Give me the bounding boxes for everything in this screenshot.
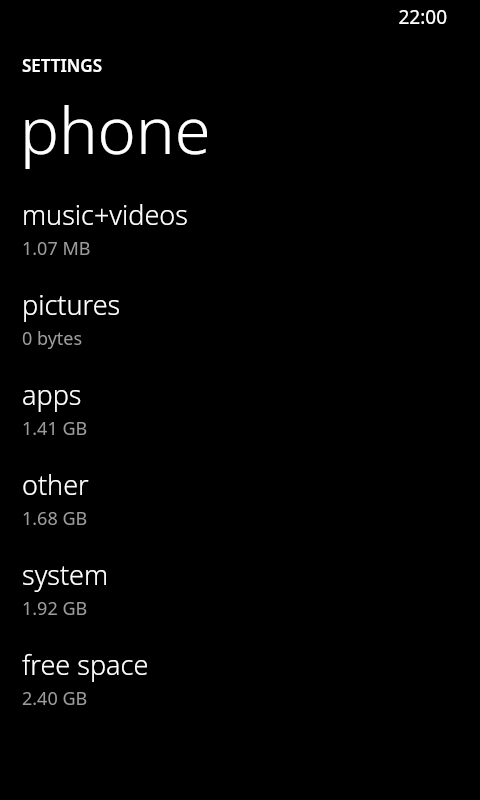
button[interactable]: apps — [0, 376, 480, 464]
staticText: other — [22, 466, 89, 503]
staticText: pictures — [22, 286, 121, 323]
button[interactable]: other — [0, 466, 480, 554]
staticText: 1.68 GB — [22, 506, 88, 531]
staticText: system — [22, 556, 109, 593]
button[interactable]: music+videos — [0, 196, 480, 284]
staticText: 22:00 — [398, 4, 447, 30]
button[interactable]: system — [0, 556, 480, 644]
staticText: music+videos — [22, 196, 188, 233]
staticText: 0 bytes — [22, 326, 83, 351]
staticText: 1.41 GB — [22, 416, 88, 441]
button[interactable]: pictures — [0, 286, 480, 374]
staticText: free space — [22, 646, 149, 683]
staticText: phone — [20, 85, 211, 174]
staticText: 2.40 GB — [22, 686, 88, 711]
button[interactable]: free space — [0, 646, 480, 734]
staticText: 1.07 MB — [22, 236, 91, 261]
staticText: apps — [22, 376, 82, 413]
staticText: SETTINGS — [22, 54, 102, 77]
staticText: 1.92 GB — [22, 596, 88, 621]
